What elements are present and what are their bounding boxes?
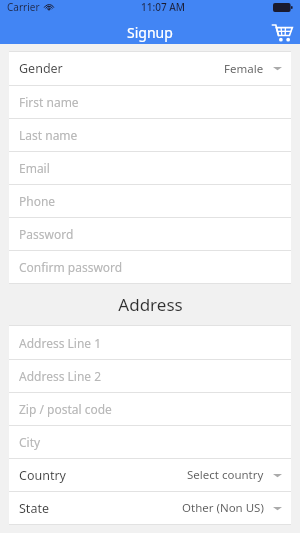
staticText: 11:07 AM	[141, 0, 185, 14]
staticText: Select country	[187, 467, 264, 483]
staticText: Password	[19, 226, 74, 242]
staticText: Last name	[19, 127, 78, 143]
staticText: Country	[19, 467, 66, 484]
staticText: Other (Non US)	[182, 500, 264, 516]
button[interactable]: City	[9, 425, 291, 458]
staticText: Zip / postal code	[19, 401, 112, 417]
button[interactable]: Phone	[9, 184, 291, 217]
button[interactable]: Address Line 1	[9, 326, 291, 359]
staticText: Address Line 1	[19, 335, 102, 351]
staticText: Gender	[19, 60, 63, 77]
button[interactable]: State	[9, 491, 291, 524]
staticText: Address	[118, 293, 183, 316]
button[interactable]: First name	[9, 85, 291, 118]
button[interactable]: Password	[9, 217, 291, 250]
staticText: City	[19, 434, 41, 450]
button[interactable]: Gender	[9, 52, 291, 85]
staticText: Signup	[127, 23, 173, 42]
staticText: Email	[19, 160, 50, 176]
button[interactable]: Email	[9, 151, 291, 184]
staticText: First name	[19, 94, 79, 110]
button[interactable]: Confirm password	[9, 250, 291, 283]
staticText: Address Line 2	[19, 368, 102, 384]
button[interactable]: Zip / postal code	[9, 392, 291, 425]
staticText: Carrier	[7, 0, 40, 14]
staticText: Female	[224, 61, 264, 77]
button[interactable]: Address Line 2	[9, 359, 291, 392]
staticText: State	[19, 500, 49, 517]
staticText: Phone	[19, 193, 56, 209]
button[interactable]: Last name	[9, 118, 291, 151]
button[interactable]: Country	[9, 458, 291, 491]
staticText: Confirm password	[19, 259, 123, 275]
button[interactable]: Cart	[270, 20, 294, 44]
